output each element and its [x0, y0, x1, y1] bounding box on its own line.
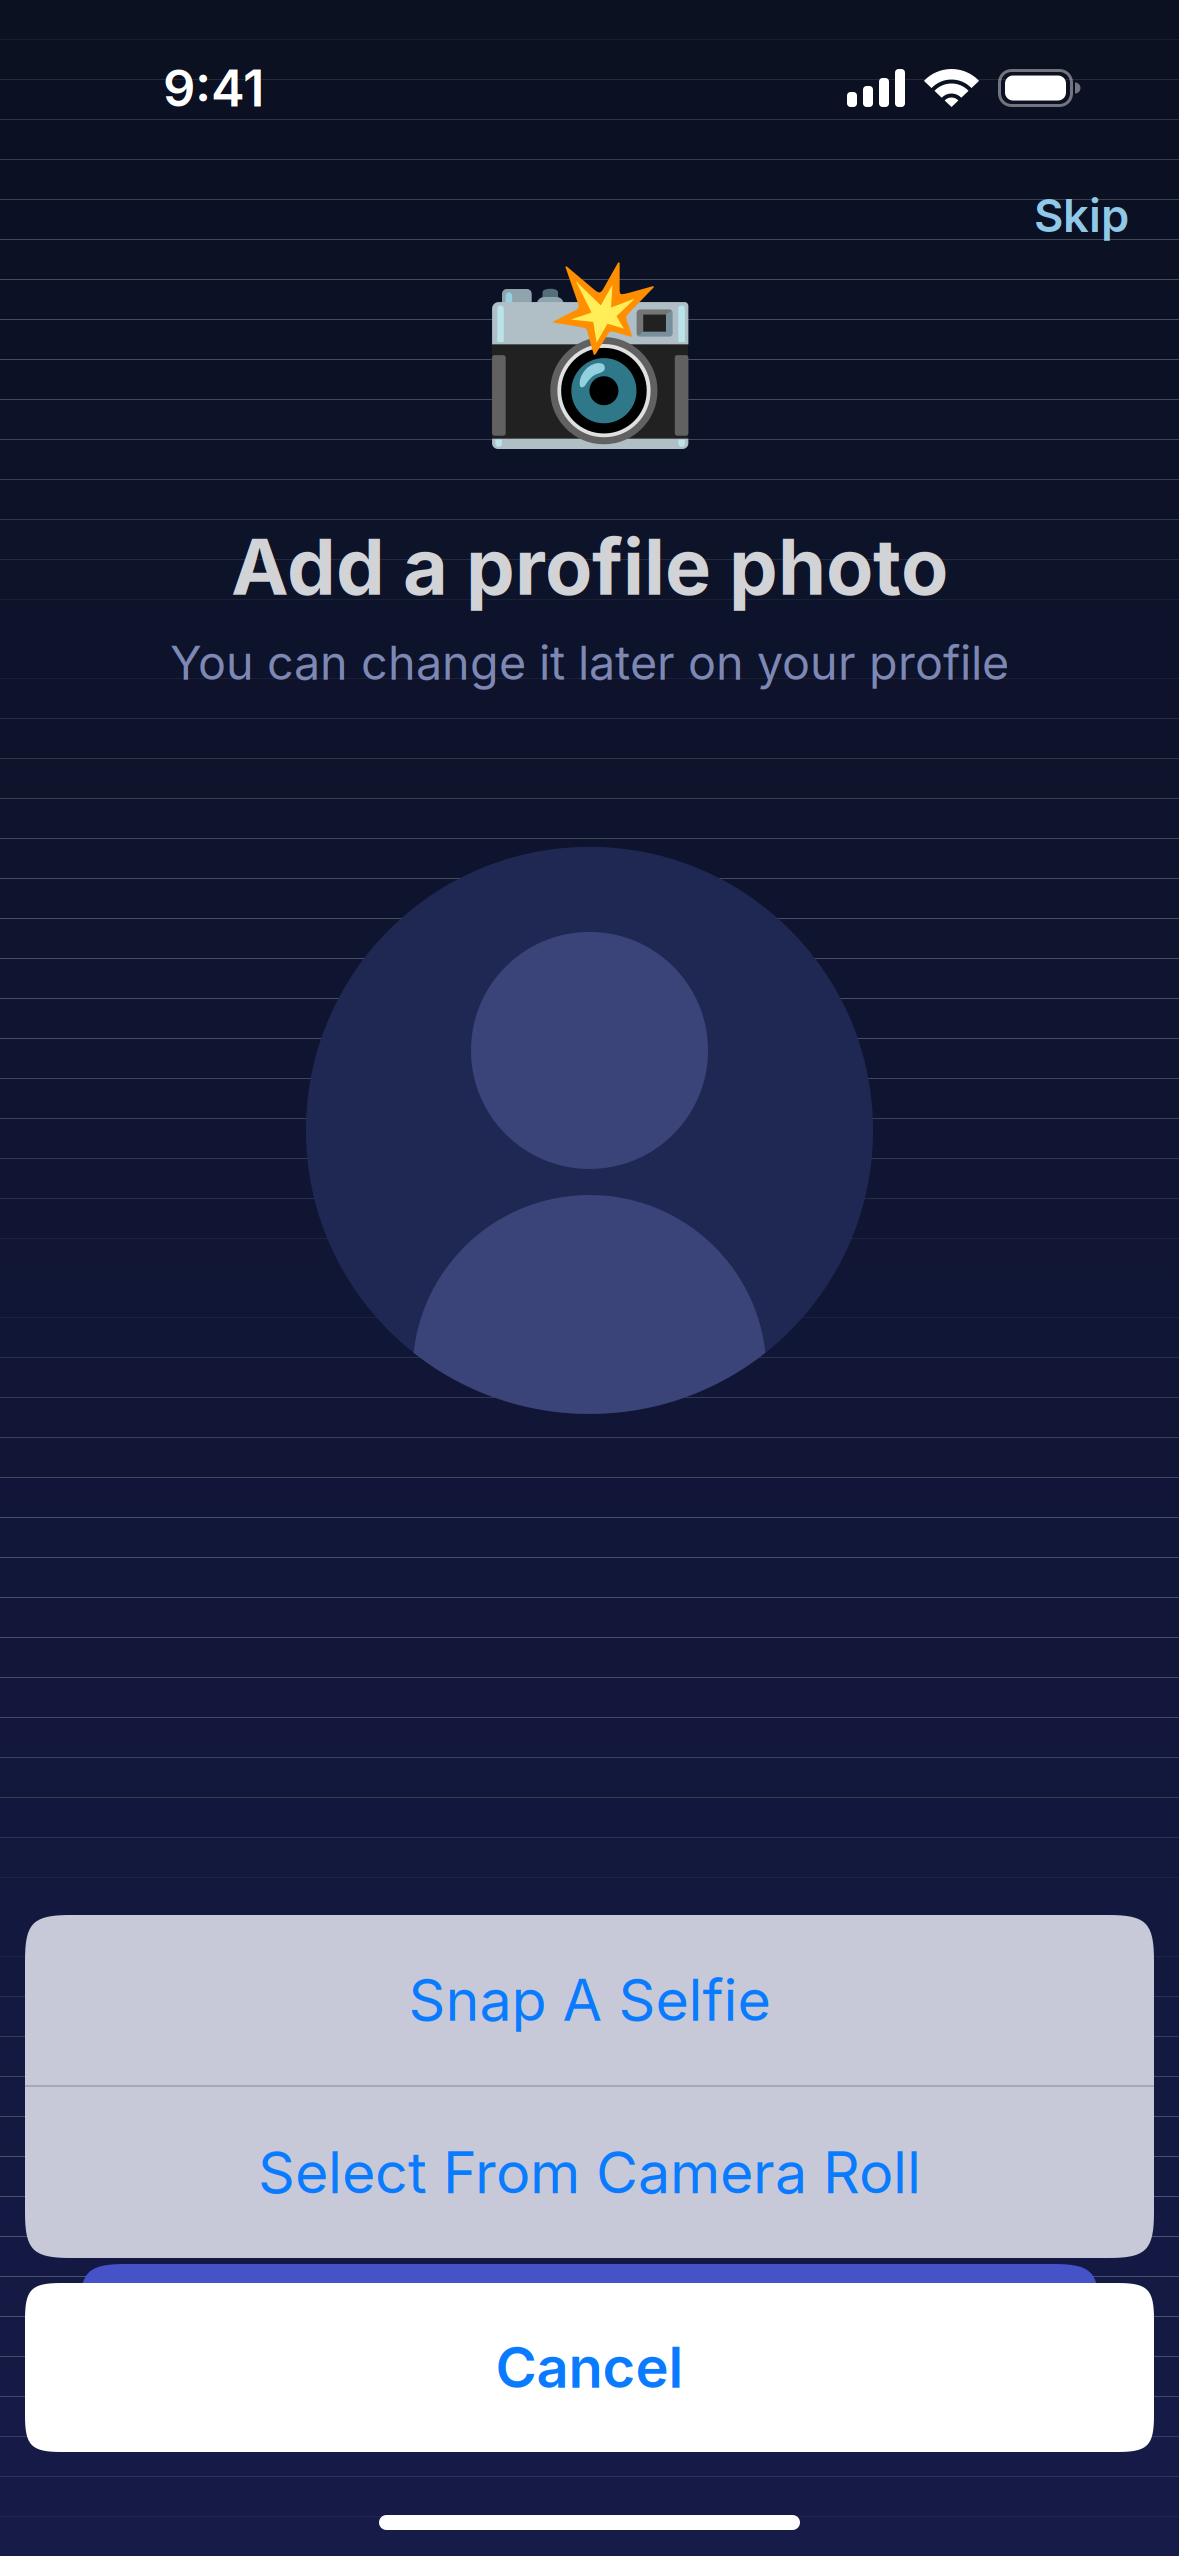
staticText: Skip [1034, 188, 1129, 243]
staticText: Snap A Selfie [408, 1965, 770, 2035]
staticText: Add a profile photo [231, 520, 948, 613]
staticText: Select From Camera Roll [258, 2138, 921, 2207]
button[interactable]: Skip [1008, 168, 1155, 263]
staticText: You can change it later on your profile [170, 634, 1009, 691]
button[interactable]: Select From Camera Roll [25, 2087, 1154, 2258]
staticText: 📸 [478, 249, 700, 453]
button[interactable]: Cancel [25, 2283, 1154, 2452]
button[interactable]: Snap A Selfie [25, 1915, 1154, 2085]
staticText: Cancel [495, 2334, 683, 2401]
staticText: 9:41 [163, 57, 264, 119]
